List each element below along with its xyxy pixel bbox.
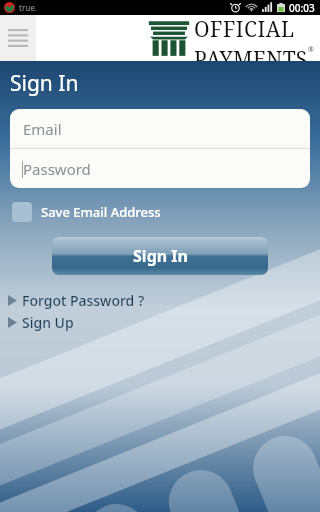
- button[interactable]: Password: [10, 149, 310, 188]
- staticText: ®: [308, 45, 314, 55]
- staticText: Sign In: [133, 245, 188, 267]
- button[interactable]: Save Email Address: [12, 202, 161, 222]
- button[interactable]: Sign In: [52, 237, 268, 275]
- button[interactable]: Forgot Password ?: [8, 291, 145, 310]
- button[interactable]: Sign Up: [8, 313, 74, 332]
- staticText: PAYMENTS: [194, 45, 308, 61]
- staticText: Password: [23, 159, 91, 179]
- staticText: 00:03: [289, 1, 315, 15]
- staticText: Sign In: [10, 69, 79, 98]
- staticText: OFFICIAL: [194, 15, 295, 44]
- staticText: Sign Up: [22, 313, 74, 332]
- staticText: Save Email Address: [41, 203, 161, 221]
- button[interactable]: Menu: [0, 15, 36, 61]
- staticText: Email: [23, 119, 62, 139]
- staticText: Forgot Password ?: [22, 291, 145, 310]
- staticText: true.: [19, 2, 37, 13]
- button[interactable]: Email: [10, 109, 310, 148]
